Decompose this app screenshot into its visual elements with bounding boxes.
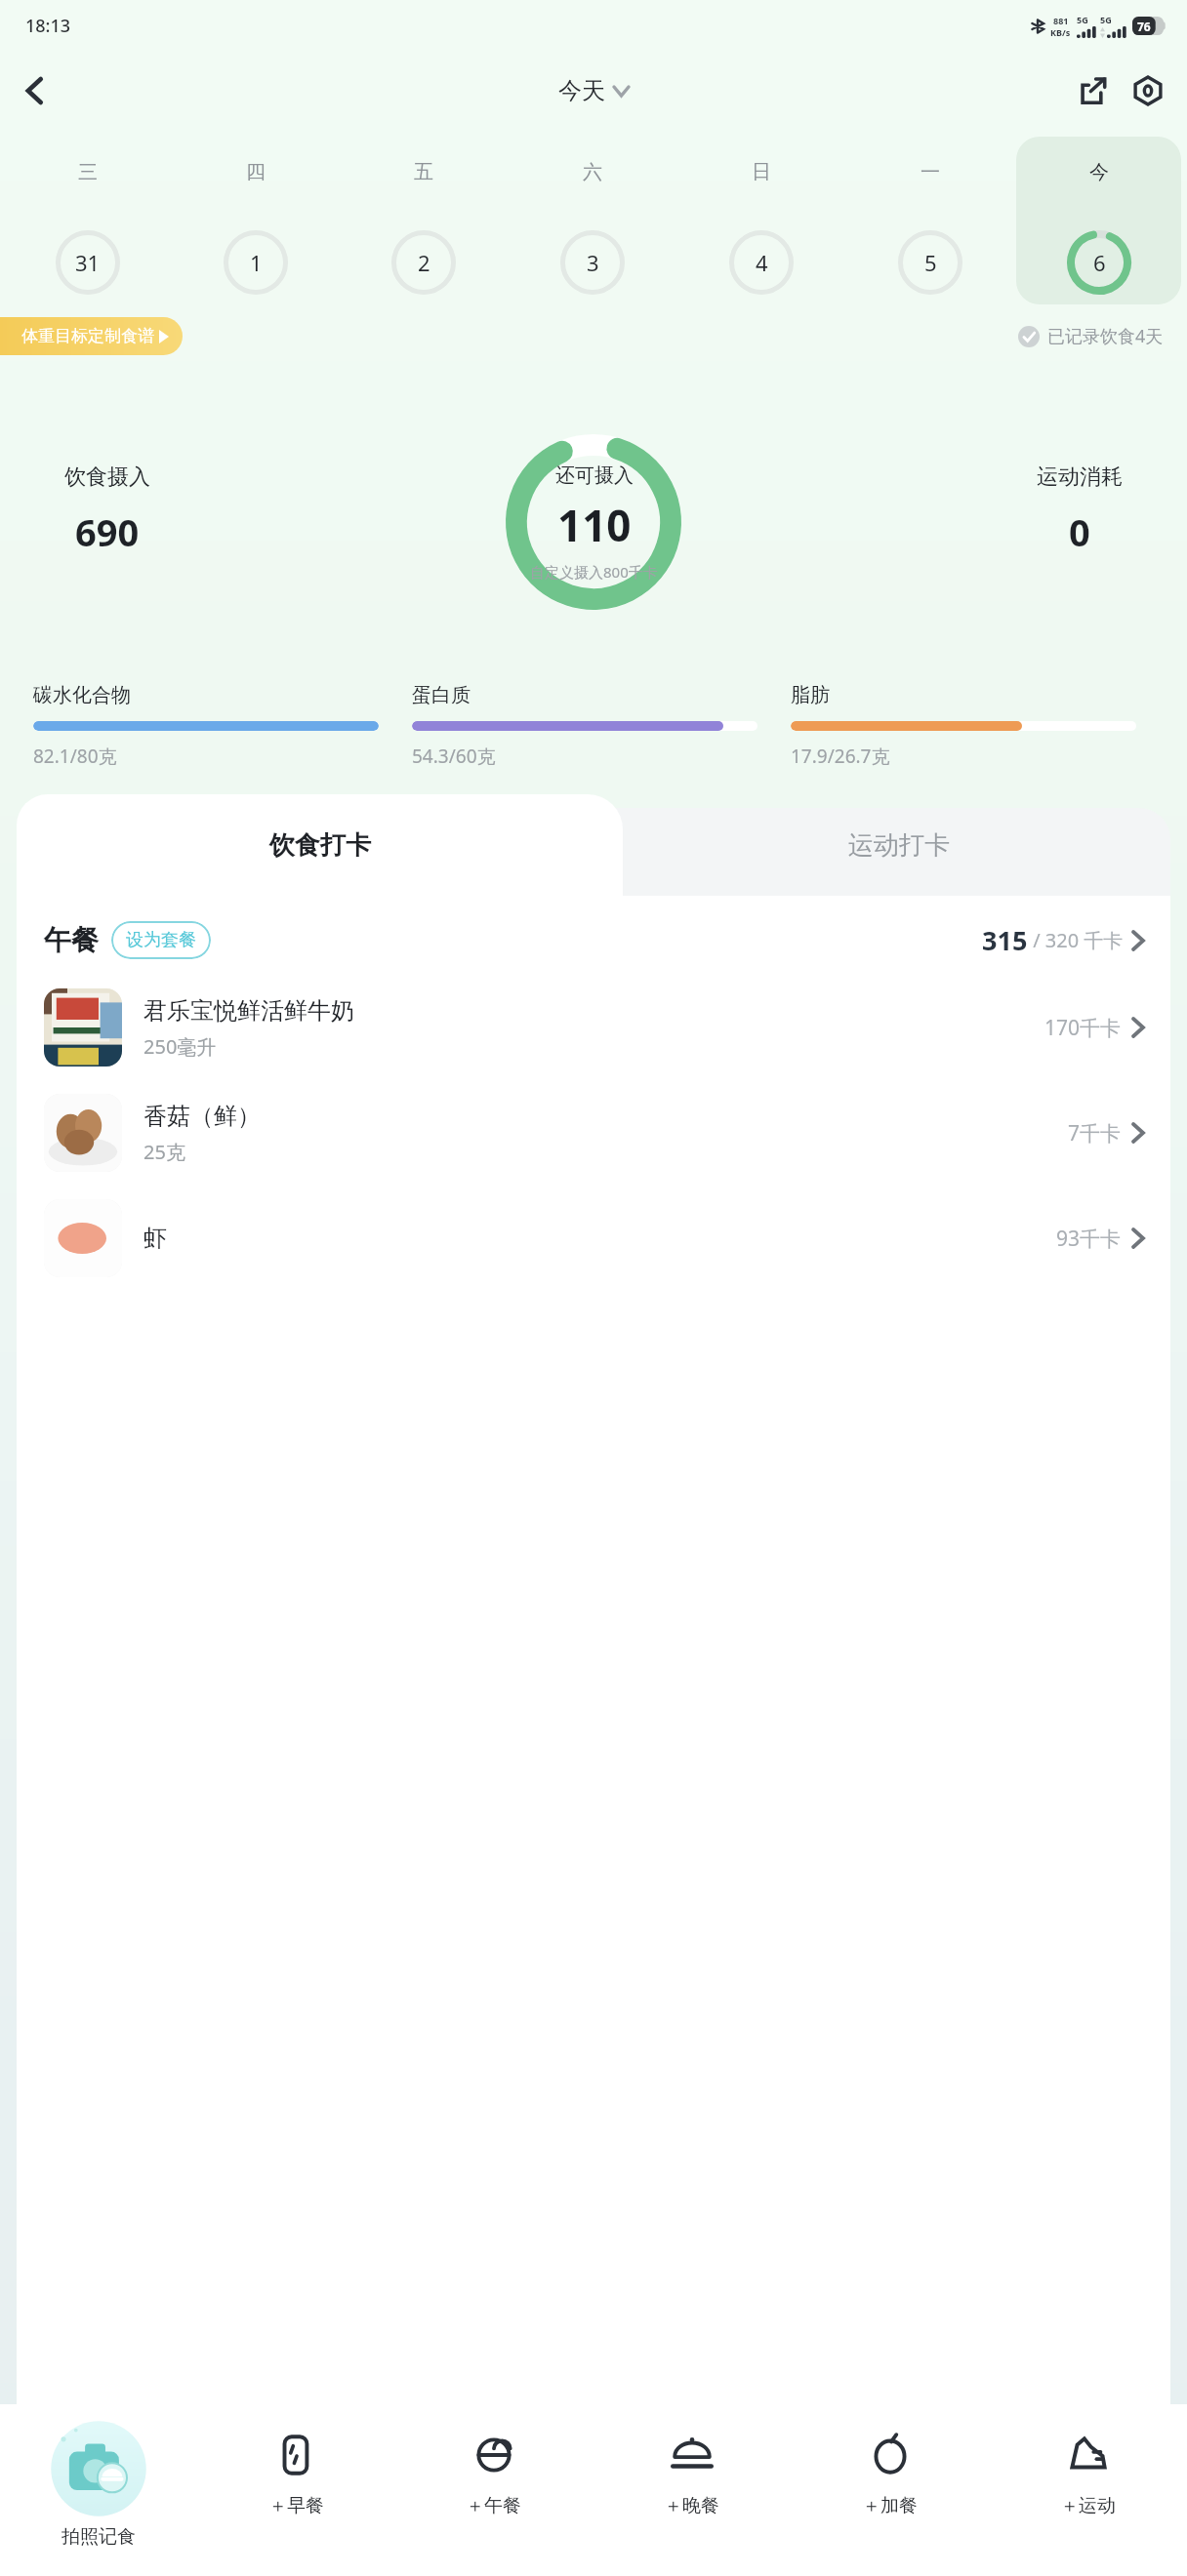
button[interactable]: 已记录饮食4天 bbox=[1014, 320, 1167, 352]
staticText: 君乐宝悦鲜活鲜牛奶 bbox=[143, 996, 354, 1026]
button[interactable]: 五 bbox=[342, 137, 506, 304]
staticText: 4 bbox=[756, 248, 768, 277]
staticText: 17.9/26.7克 bbox=[791, 744, 890, 769]
staticText: 31 bbox=[75, 248, 101, 277]
staticText: 体重目标定制食谱 bbox=[21, 326, 154, 346]
staticText: 18:13 bbox=[25, 14, 71, 38]
button[interactable]: 日 bbox=[678, 137, 843, 304]
button[interactable]: 体重目标定制食谱 bbox=[0, 317, 183, 355]
staticText: 25克 bbox=[143, 1139, 185, 1165]
staticText: 110 bbox=[557, 496, 632, 554]
button[interactable]: 饮食打卡 bbox=[17, 794, 623, 896]
button[interactable]: ＋加餐 bbox=[791, 2412, 989, 2517]
staticText: ＋午餐 bbox=[466, 2494, 521, 2517]
staticText: 82.1/80克 bbox=[33, 744, 117, 769]
button[interactable]: 拍照记食 bbox=[0, 2412, 197, 2549]
staticText: 170千卡 bbox=[1044, 1014, 1122, 1042]
button[interactable]: ＋午餐 bbox=[394, 2412, 593, 2517]
staticText: 5 bbox=[924, 248, 937, 277]
staticText: 93千卡 bbox=[1056, 1225, 1122, 1253]
staticText: 5G bbox=[1100, 14, 1112, 25]
staticText: 香菇（鲜） bbox=[143, 1102, 261, 1131]
staticText: 午餐 bbox=[44, 923, 99, 957]
staticText: 已记录饮食4天 bbox=[1047, 324, 1164, 348]
button[interactable]: Back bbox=[8, 63, 62, 118]
staticText: 1 bbox=[250, 248, 263, 277]
staticText: ＋晚餐 bbox=[664, 2494, 719, 2517]
button[interactable]: 虾 bbox=[17, 1186, 1170, 1291]
button[interactable]: 今天 bbox=[553, 70, 634, 111]
staticText: 5G bbox=[1077, 14, 1088, 25]
button[interactable]: 君乐宝悦鲜活鲜牛奶 bbox=[17, 975, 1170, 1080]
staticText: 设为套餐 bbox=[126, 929, 196, 951]
staticText: 一 bbox=[921, 160, 940, 184]
staticText: 今 bbox=[1089, 160, 1109, 184]
staticText: 五 bbox=[414, 160, 433, 184]
staticText: 250毫升 bbox=[143, 1033, 217, 1060]
button[interactable]: 运动打卡 bbox=[628, 794, 1170, 896]
staticText: 蛋白质 bbox=[412, 683, 471, 707]
staticText: 3 bbox=[587, 248, 599, 277]
staticText: 881 bbox=[1053, 15, 1069, 26]
button[interactable]: 设为套餐 bbox=[111, 921, 211, 959]
staticText: 315 bbox=[982, 922, 1028, 958]
staticText: ＋运动 bbox=[1060, 2494, 1116, 2517]
staticText: ＋早餐 bbox=[268, 2494, 324, 2517]
staticText: 7千卡 bbox=[1068, 1119, 1122, 1147]
button[interactable]: 六 bbox=[510, 137, 675, 304]
staticText: 54.3/60克 bbox=[412, 744, 496, 769]
button[interactable]: Share bbox=[1066, 63, 1121, 118]
staticText: 运动打卡 bbox=[848, 829, 950, 862]
staticText: 6 bbox=[1093, 248, 1106, 277]
staticText: 饮食摄入 bbox=[64, 463, 150, 491]
staticText: 碳水化合物 bbox=[33, 683, 131, 707]
button[interactable]: 午餐 bbox=[17, 915, 1170, 965]
button[interactable]: 一 bbox=[847, 137, 1012, 304]
button[interactable]: 四 bbox=[174, 137, 338, 304]
button[interactable]: Settings bbox=[1121, 63, 1175, 118]
staticText: KB/s bbox=[1050, 26, 1071, 38]
staticText: 四 bbox=[246, 160, 266, 184]
staticText: 日 bbox=[752, 160, 771, 184]
button[interactable]: 还可摄入 bbox=[506, 434, 681, 610]
staticText: 690 bbox=[75, 506, 140, 557]
button[interactable]: 今 bbox=[1016, 137, 1181, 304]
staticText: 今天 bbox=[558, 76, 605, 105]
staticText: 拍照记食 bbox=[61, 2525, 136, 2549]
staticText: / 320 千卡 bbox=[1028, 927, 1124, 953]
button[interactable]: 香菇（鲜） bbox=[17, 1080, 1170, 1186]
staticText: ＋加餐 bbox=[862, 2494, 918, 2517]
button[interactable]: ＋运动 bbox=[989, 2412, 1187, 2517]
staticText: 运动消耗 bbox=[1037, 463, 1123, 491]
staticText: 脂肪 bbox=[791, 683, 830, 707]
staticText: 自定义摄入800千卡 bbox=[530, 562, 658, 582]
staticText: 饮食打卡 bbox=[269, 829, 371, 862]
staticText: 2 bbox=[418, 248, 430, 277]
staticText: 76 bbox=[1137, 19, 1151, 34]
staticText: 还可摄入 bbox=[555, 463, 634, 488]
staticText: 0 bbox=[1069, 506, 1090, 557]
button[interactable]: 三 bbox=[6, 137, 170, 304]
button[interactable]: ＋早餐 bbox=[197, 2412, 394, 2517]
button[interactable]: ＋晚餐 bbox=[593, 2412, 791, 2517]
staticText: 虾 bbox=[143, 1224, 167, 1253]
staticText: 三 bbox=[78, 160, 98, 184]
staticText: 六 bbox=[583, 160, 602, 184]
